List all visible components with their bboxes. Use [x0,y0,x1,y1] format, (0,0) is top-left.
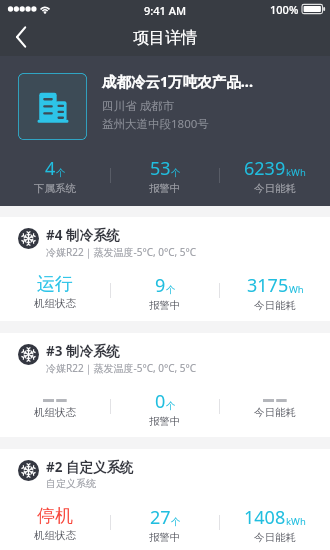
staticText: 9 [155,273,166,298]
staticText: 0 [155,389,166,414]
staticText: 9:41 AM [144,3,187,18]
button[interactable]: #3 制冷系统 [0,333,330,437]
staticText: 今日能耗 [254,531,296,544]
staticText: 自定义系统 [46,477,96,490]
staticText: 100% [270,2,299,17]
staticText: 个 [171,516,181,528]
staticText: 个 [166,284,176,296]
staticText: 个 [171,167,181,179]
staticText: 27 [150,505,171,530]
staticText: 机组状态 [34,529,76,542]
staticText: Wh [289,283,304,296]
staticText: #2 自定义系统 [46,458,134,476]
staticText: 停机 [37,505,73,528]
staticText: 机组状态 [34,297,76,310]
staticText: 益州大道中段1800号 [102,116,209,132]
staticText: 运行 [37,273,73,296]
staticText: 项目详情 [133,28,197,48]
staticText: 个 [166,400,176,412]
staticText: #3 制冷系统 [46,342,120,360]
staticText: 今日能耗 [254,182,296,195]
staticText: kWh [286,166,306,179]
staticText: 6239 [244,156,286,181]
staticText: 机组状态 [34,406,76,419]
staticText: 3175 [247,273,289,298]
staticText: 1408 [244,505,286,530]
staticText: 成都冷云1万吨农产品... [102,71,254,91]
staticText: 冷媒R22｜蒸发温度-5°C, 0°C, 5°C [46,361,197,375]
staticText: 四川省 成都市 [102,98,174,114]
staticText: 今日能耗 [254,299,296,312]
staticText: 报警中 [149,182,181,195]
staticText: 冷媒R22｜蒸发温度-5°C, 0°C, 5°C [46,245,197,259]
staticText: 报警中 [149,531,181,544]
staticText: 今日能耗 [254,406,296,419]
staticText: kWh [286,515,306,528]
staticText: 报警中 [149,299,181,312]
staticText: 个 [56,167,66,179]
staticText: 53 [150,156,171,181]
button[interactable]: #4 制冷系统 [0,217,330,321]
button[interactable]: #2 自定义系统 [0,449,330,550]
staticText: 下属系统 [34,182,76,195]
staticText: 报警中 [149,415,181,428]
button[interactable]: Back [0,18,44,56]
staticText: #4 制冷系统 [46,226,120,244]
staticText: 4 [45,156,56,181]
